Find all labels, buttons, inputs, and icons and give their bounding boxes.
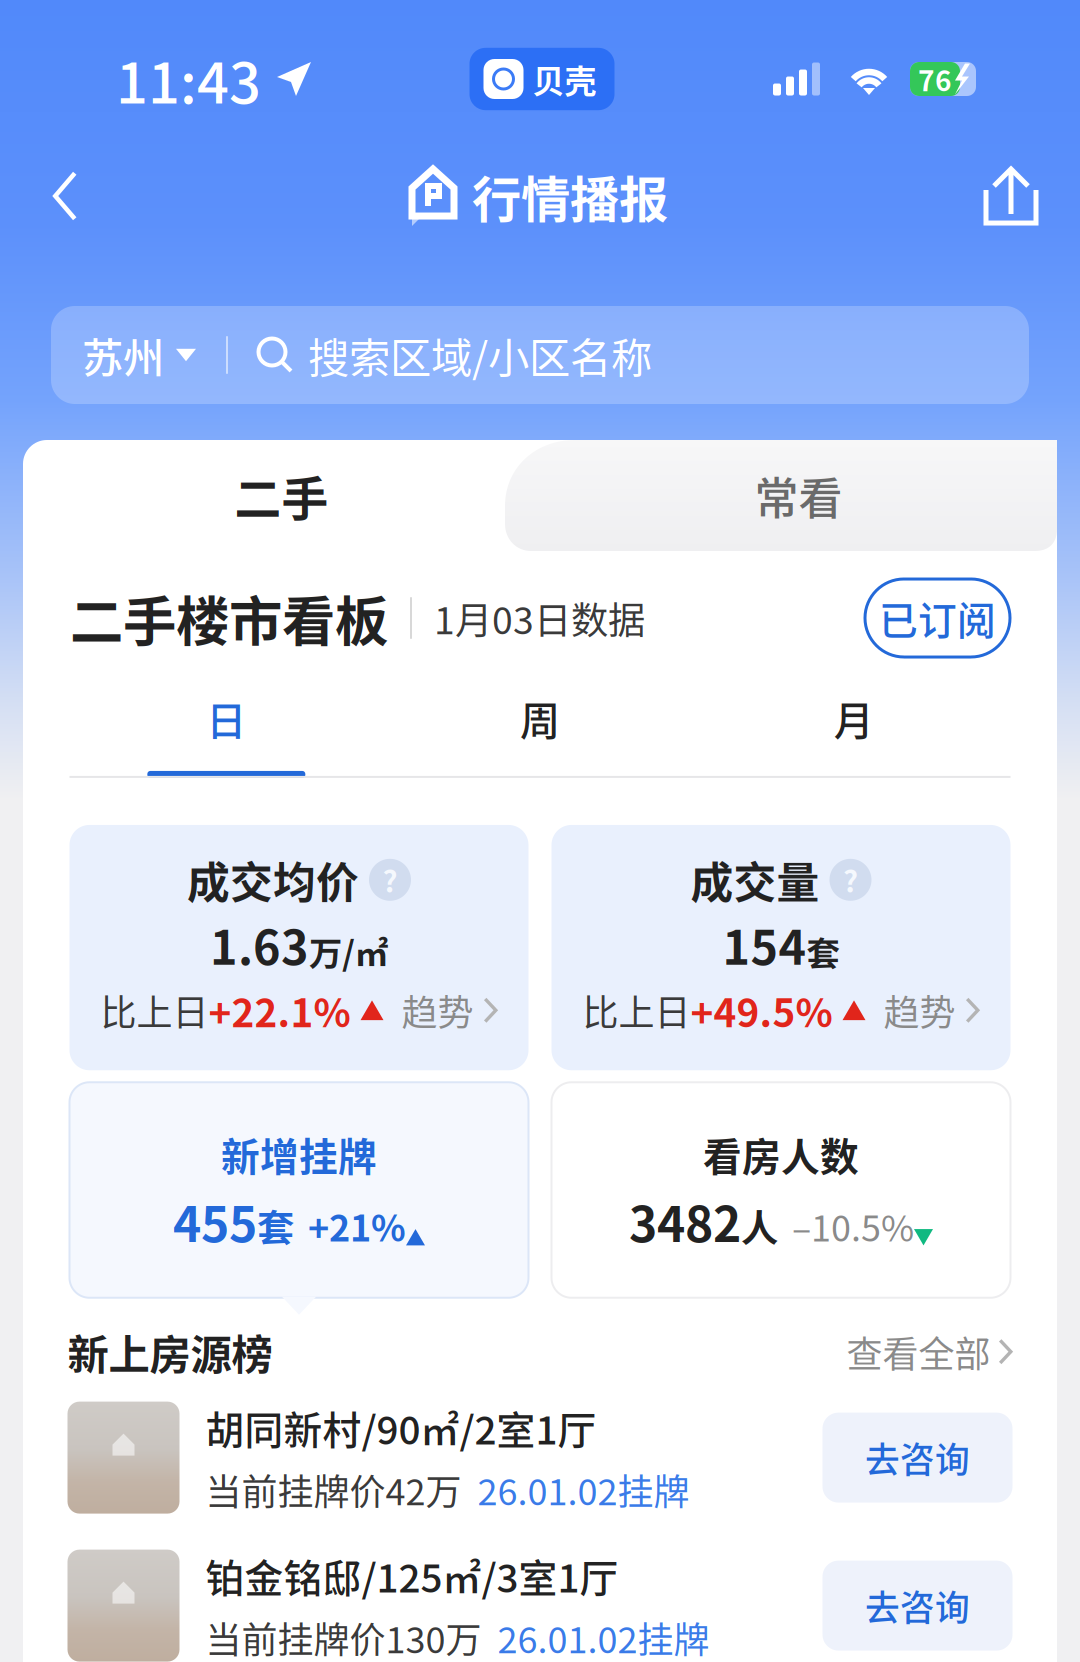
button[interactable]: Share xyxy=(968,153,1054,239)
button[interactable]: 胡同新村/90㎡/2室1厅 xyxy=(67,1384,1012,1532)
staticText: 比上日 xyxy=(100,984,208,1036)
button[interactable]: 常看 xyxy=(540,440,1057,551)
staticText: 周 xyxy=(520,689,560,747)
button[interactable]: 日 xyxy=(69,689,383,778)
staticText: 1月03日数据 xyxy=(434,591,645,645)
staticText: 趋势 xyxy=(883,984,955,1036)
staticText: ? xyxy=(382,859,397,901)
button[interactable]: 二手 xyxy=(23,440,540,551)
staticText: 11:43 xyxy=(116,38,261,120)
staticText: 苏州 xyxy=(82,325,164,385)
staticText: 1.63 xyxy=(210,911,309,978)
button[interactable]: Back xyxy=(22,153,108,239)
staticText: 当前挂牌价130万 xyxy=(205,1611,481,1662)
staticText: 查看全部 xyxy=(846,1326,990,1378)
staticText: 当前挂牌价42万 xyxy=(205,1463,461,1516)
staticText: 套 xyxy=(257,1199,294,1253)
button[interactable]: 铂金铭邸/125㎡/3室1厅 xyxy=(67,1532,1012,1662)
staticText: 贝壳 xyxy=(532,56,596,102)
staticText: 比上日 xyxy=(582,984,690,1036)
staticText: 3482 xyxy=(629,1186,741,1256)
staticText: +22.1% xyxy=(208,982,350,1038)
staticText: +49.5% xyxy=(690,982,832,1038)
staticText: 成交均价 xyxy=(187,849,359,911)
staticText: 搜索区域/小区名称 xyxy=(308,325,652,385)
staticText: –10.5% xyxy=(792,1200,914,1252)
staticText: 76 xyxy=(918,59,952,99)
button[interactable]: 成交量 xyxy=(551,825,1010,1070)
staticText: 胡同新村/90㎡/2室1厅 xyxy=(205,1400,596,1456)
staticText: 26.01.02挂牌 xyxy=(497,1611,709,1662)
button[interactable]: 新增挂牌 xyxy=(69,1082,528,1298)
staticText: 铂金铭邸/125㎡/3室1厅 xyxy=(205,1548,618,1604)
staticText: 成交量 xyxy=(690,849,819,911)
staticText: 趋势 xyxy=(401,984,473,1036)
staticText: +21% xyxy=(308,1200,406,1252)
staticText: 行情播报 xyxy=(472,160,668,232)
staticText: 已订阅 xyxy=(879,590,996,646)
staticText: 26.01.02挂牌 xyxy=(477,1463,689,1516)
staticText: 去咨询 xyxy=(865,1432,970,1483)
button[interactable]: 查看全部 xyxy=(846,1326,1012,1378)
staticText: 看房人数 xyxy=(703,1126,859,1182)
button[interactable]: 苏州 xyxy=(51,306,1029,404)
button[interactable]: 周 xyxy=(383,689,697,778)
staticText: 人 xyxy=(741,1199,778,1253)
staticText: 套 xyxy=(806,927,839,975)
staticText: 154 xyxy=(722,911,806,978)
button[interactable]: 看房人数 xyxy=(551,1082,1010,1298)
staticText: 去咨询 xyxy=(865,1580,970,1631)
staticText: 常看 xyxy=(754,464,842,527)
staticText: 月 xyxy=(834,689,874,747)
staticText: 455 xyxy=(173,1186,257,1256)
staticText: 新增挂牌 xyxy=(221,1126,377,1182)
button[interactable]: 已订阅 xyxy=(865,579,1010,657)
staticText: 日 xyxy=(206,689,246,747)
button[interactable]: 成交均价 xyxy=(69,825,528,1070)
staticText: 二手楼市看板 xyxy=(70,579,388,657)
staticText: ? xyxy=(843,859,858,901)
staticText: 万/㎡ xyxy=(309,927,388,975)
staticText: 二手 xyxy=(234,462,328,529)
button[interactable]: 月 xyxy=(697,689,1010,778)
staticText: 新上房源榜 xyxy=(67,1322,272,1382)
